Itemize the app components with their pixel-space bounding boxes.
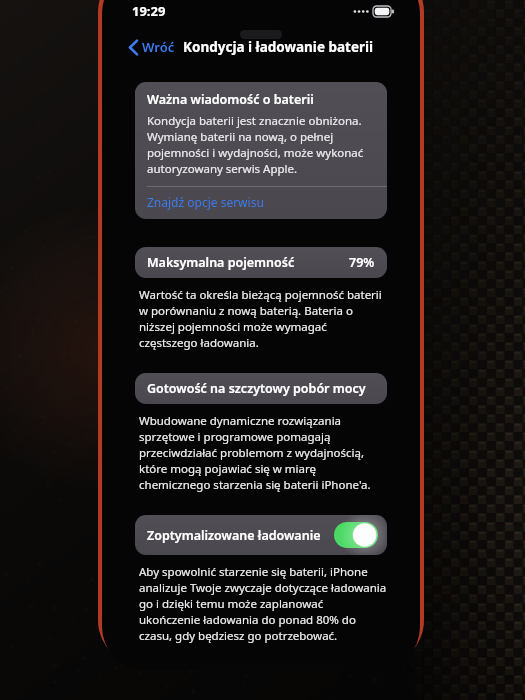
staticText: Kondycja baterii jest znacznie obniżona.…	[147, 113, 375, 177]
staticText: Wartość ta określa bieżącą pojemność bat…	[139, 287, 387, 351]
staticText: 19:29	[132, 2, 166, 20]
staticText: Znajdź opcje serwisu	[147, 194, 264, 210]
button[interactable]: Znajdź opcje serwisu	[135, 187, 387, 219]
staticText: Maksymalna pojemność	[147, 254, 295, 271]
button[interactable]: Maksymalna pojemność	[135, 247, 387, 278]
button[interactable]: Zoptymalizowane ładowanie	[135, 515, 387, 555]
button[interactable]: Zoptymalizowane ładowanie, włączone	[334, 522, 378, 548]
staticText: Gotowość na szczytowy pobór mocy	[147, 380, 366, 397]
staticText: Wbudowane dynamiczne rozwiązania sprzęto…	[139, 413, 387, 493]
button[interactable]: Gotowość na szczytowy pobór mocy	[135, 373, 387, 404]
staticText: Kondycja i ładowanie baterii	[183, 38, 374, 56]
button[interactable]: Wróć	[125, 36, 178, 58]
staticText: 79%	[349, 254, 375, 271]
staticText: Ważna wiadomość o baterii	[147, 91, 314, 108]
staticText: Zoptymalizowane ładowanie	[147, 527, 321, 544]
staticText: Aby spowolnić starzenie się baterii, iPh…	[139, 564, 387, 644]
staticText: Wróć	[142, 38, 175, 56]
